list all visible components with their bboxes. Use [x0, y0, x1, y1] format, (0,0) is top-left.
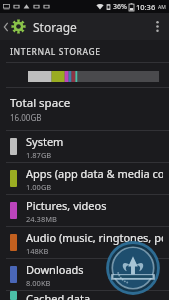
button[interactable]: Pictures, videos — [0, 195, 169, 226]
button[interactable]: More options — [145, 13, 169, 40]
staticText: 1.00GB — [26, 182, 52, 192]
staticText: Apps (app data & media co — [26, 166, 163, 181]
staticText: Cached data — [26, 291, 91, 300]
staticText: 8.00KB — [26, 278, 51, 288]
button[interactable]: Apps (app data & media co — [0, 163, 169, 194]
staticText: Pictures, videos — [26, 198, 107, 213]
staticText: Total space — [10, 95, 71, 111]
button[interactable]: Navigate up — [0, 13, 28, 40]
button[interactable]: Audio (music, ringtones, po — [0, 227, 169, 258]
button[interactable]: Downloads — [0, 259, 169, 290]
staticText: 10:36 — [136, 2, 156, 12]
button[interactable]: Total space — [0, 88, 169, 130]
staticText: Audio (music, ringtones, po — [26, 230, 163, 245]
staticText: 1.87GB — [26, 150, 52, 160]
staticText: System — [26, 134, 64, 149]
staticText: INTERNAL STORAGE — [10, 46, 101, 58]
staticText: 36% — [113, 2, 127, 12]
staticText: 148KB — [26, 246, 49, 256]
staticText: 16.00GB — [10, 112, 42, 123]
button[interactable]: System — [0, 131, 169, 162]
staticText: 24.38MB — [26, 214, 57, 224]
staticText: Storage — [33, 19, 77, 35]
staticText: AM — [158, 4, 166, 11]
button[interactable]: Cached data — [0, 291, 169, 300]
staticText: Downloads — [26, 262, 84, 277]
